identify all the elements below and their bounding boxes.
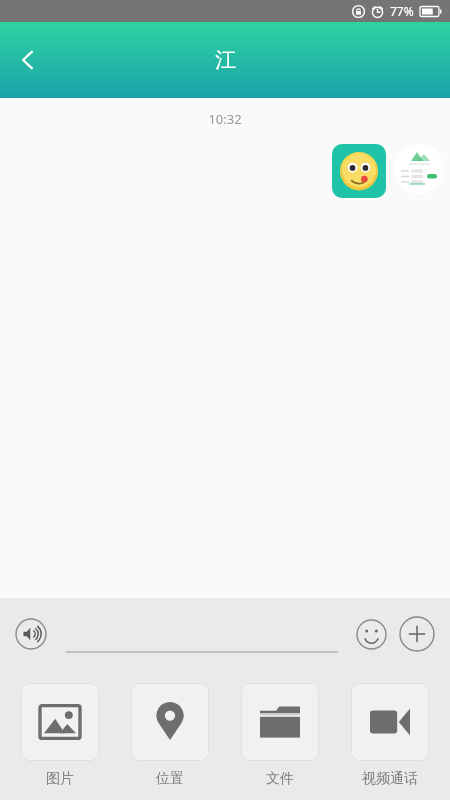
staticText: 文件	[266, 770, 294, 788]
button[interactable]: Voice message	[14, 617, 48, 651]
staticText: 江	[215, 47, 236, 73]
button[interactable]: Sticker	[332, 144, 386, 198]
staticText: 图片	[46, 770, 74, 788]
button[interactable]: Back	[6, 38, 50, 82]
staticText: 位置	[156, 770, 184, 788]
button[interactable]: 位置	[124, 683, 216, 788]
button[interactable]: Emoji	[354, 617, 388, 651]
button[interactable]: More options	[398, 615, 436, 653]
button[interactable]: 视频通话	[344, 683, 436, 788]
staticText: 视频通话	[362, 770, 418, 788]
staticText: 10:32	[0, 110, 450, 128]
button[interactable]: 文件	[234, 683, 326, 788]
button[interactable]: Avatar	[394, 144, 444, 194]
staticText: 77%	[390, 3, 414, 19]
button[interactable]: 图片	[14, 683, 106, 788]
